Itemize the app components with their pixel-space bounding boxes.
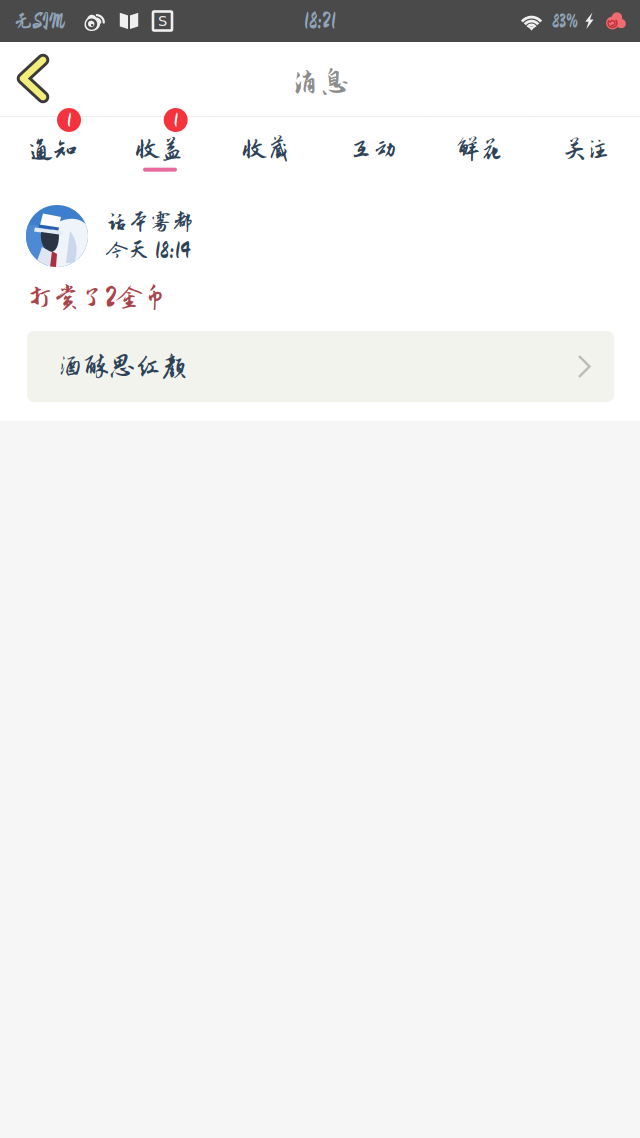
staticText: 1: [174, 110, 178, 130]
staticText: 消息: [290, 65, 350, 99]
staticText: 18:21: [304, 10, 336, 32]
button[interactable]: 鲜花: [427, 117, 533, 183]
staticText: 83%: [552, 11, 578, 31]
staticText: 互动: [349, 136, 397, 163]
button[interactable]: 收益: [107, 117, 213, 183]
button[interactable]: 关注: [533, 117, 640, 183]
staticText: 收藏: [243, 136, 291, 163]
staticText: 酒醉思红颜: [57, 352, 187, 381]
staticText: 话本雾都: [106, 210, 194, 234]
staticText: 通知: [29, 136, 77, 163]
staticText: 鲜花: [456, 136, 504, 163]
staticText: 今天 18:14: [106, 238, 191, 262]
button[interactable]: 互动: [320, 117, 427, 183]
staticText: 关注: [563, 136, 611, 163]
button[interactable]: Back: [0, 42, 66, 116]
button[interactable]: 收藏: [213, 117, 320, 183]
button[interactable]: 酒醉思红颜: [27, 331, 614, 402]
staticText: 1: [67, 110, 71, 130]
staticText: S: [158, 12, 167, 30]
staticText: 收益: [136, 136, 184, 163]
staticText: 打赏了2金币: [27, 283, 168, 312]
staticText: 无SIM: [13, 10, 65, 32]
button[interactable]: 通知: [0, 117, 107, 183]
